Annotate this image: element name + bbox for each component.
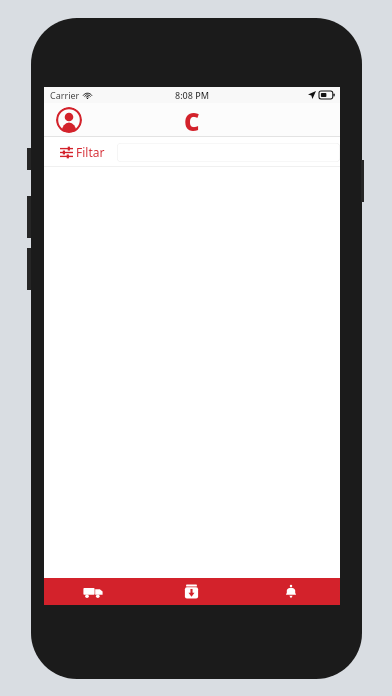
staticText: 8:08 PM [175, 89, 209, 101]
button[interactable]: Notifications [241, 578, 340, 605]
button[interactable]: Deliveries [44, 578, 142, 605]
staticText: Carrier [50, 89, 80, 101]
button[interactable]: Profile [56, 107, 82, 133]
staticText: C [184, 105, 200, 138]
button[interactable]: Filtar [58, 141, 107, 163]
button[interactable]: Inbox [142, 578, 241, 605]
staticText: Filtar [76, 144, 105, 160]
